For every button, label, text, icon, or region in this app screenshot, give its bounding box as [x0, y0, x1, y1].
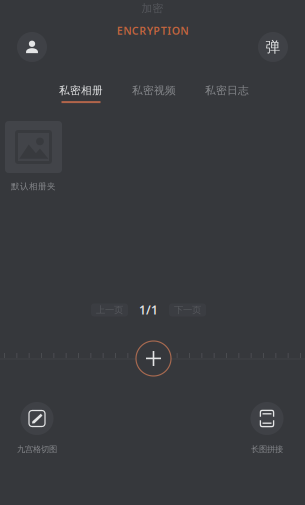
- button[interactable]: Add: [136, 341, 171, 376]
- staticText: 1/1: [139, 302, 158, 318]
- staticText: 默认相册夹: [11, 181, 56, 192]
- staticText: 上一页: [96, 304, 123, 316]
- button[interactable]: 上一页: [91, 303, 128, 316]
- button[interactable]: 长图拼接: [232, 402, 302, 454]
- button[interactable]: 弹: [258, 32, 288, 62]
- staticText: 私密相册: [59, 84, 103, 97]
- staticText: 下一页: [174, 304, 201, 316]
- staticText: ENCRYPTION: [117, 23, 188, 38]
- button[interactable]: 私密相册: [48, 84, 114, 103]
- staticText: 九宫格切图: [17, 444, 57, 454]
- button[interactable]: 九宫格切图: [2, 402, 72, 454]
- staticText: 长图拼接: [251, 444, 283, 454]
- button[interactable]: 下一页: [169, 303, 206, 316]
- staticText: 私密视频: [132, 84, 176, 97]
- button[interactable]: 私密日志: [194, 84, 260, 103]
- staticText: 私密日志: [205, 84, 249, 97]
- staticText: 弹: [265, 38, 280, 56]
- button[interactable]: 私密视频: [121, 84, 187, 103]
- button[interactable]: Account: [17, 32, 47, 62]
- staticText: 加密: [141, 2, 163, 15]
- button[interactable]: 默认相册夹: [0, 121, 67, 192]
